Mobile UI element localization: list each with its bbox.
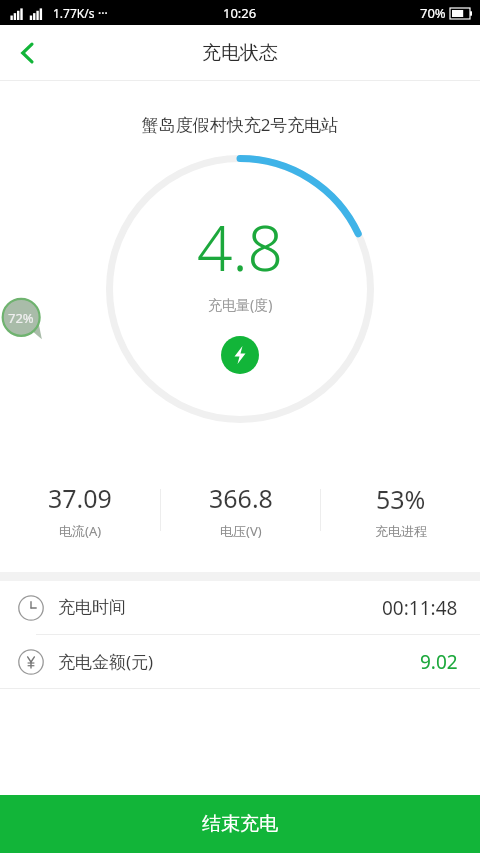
staticText: 充电金额(元) bbox=[58, 650, 154, 673]
button[interactable]: Back bbox=[0, 25, 55, 80]
staticText: ··· bbox=[98, 5, 108, 21]
staticText: 1.77K/s bbox=[53, 5, 95, 21]
staticText: 充电状态 bbox=[202, 41, 278, 65]
staticText: 4.8 bbox=[197, 205, 283, 289]
staticText: 37.09 bbox=[48, 481, 112, 515]
staticText: 70% bbox=[420, 4, 446, 22]
button[interactable]: 充电金额(元) bbox=[0, 635, 480, 688]
other: Charging bbox=[221, 336, 259, 374]
staticText: 72% bbox=[8, 309, 34, 327]
staticText: 结束充电 bbox=[202, 812, 278, 836]
staticText: 10:26 bbox=[223, 4, 257, 22]
button[interactable]: 充电时间 bbox=[0, 581, 480, 634]
staticText: 蟹岛度假村快充2号充电站 bbox=[0, 113, 480, 136]
staticText: 电压(V) bbox=[220, 522, 262, 540]
staticText: 53% bbox=[376, 482, 426, 516]
staticText: 充电进程 bbox=[375, 523, 427, 539]
staticText: 366.8 bbox=[209, 481, 273, 515]
button[interactable]: 结束充电 bbox=[0, 795, 480, 853]
staticText: 电流(A) bbox=[59, 522, 102, 540]
staticText: 充电量(度) bbox=[208, 295, 273, 314]
staticText: 9.02 bbox=[420, 649, 458, 675]
staticText: 00:11:48 bbox=[382, 595, 458, 621]
staticText: 充电时间 bbox=[58, 597, 126, 618]
